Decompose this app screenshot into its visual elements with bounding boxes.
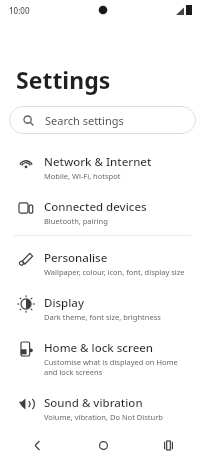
staticText: Network & Internet	[44, 154, 152, 170]
staticText: Display	[44, 295, 84, 311]
button[interactable]: Recents	[157, 434, 179, 456]
staticText: Mobile, Wi-Fi, hotspot	[44, 171, 121, 181]
button[interactable]: Sound & vibration	[0, 386, 205, 431]
staticText: Bluetooth, pairing	[44, 216, 108, 226]
staticText: Wallpaper, colour, icon, font, display s…	[44, 267, 185, 277]
button[interactable]: Notifications	[0, 431, 205, 456]
staticText: Volume, vibration, Do Not Disturb	[44, 412, 163, 422]
button[interactable]: Search settings	[9, 106, 196, 134]
staticText: Home & lock screen	[44, 340, 154, 356]
button[interactable]: Back	[26, 434, 48, 456]
staticText: Settings	[16, 64, 111, 95]
staticText: Personalise	[44, 250, 108, 266]
button[interactable]: Display	[0, 286, 205, 331]
button[interactable]: Connected devices	[0, 190, 205, 235]
staticText: Notifications	[44, 440, 115, 447]
button[interactable]: Personalise	[0, 241, 205, 286]
staticText: Search settings	[45, 113, 124, 128]
staticText: Connected devices	[44, 199, 147, 215]
staticText: 10:00	[9, 5, 30, 16]
staticText: Customise what is displayed on Home and …	[44, 357, 191, 377]
staticText: Sound & vibration	[44, 395, 143, 411]
button[interactable]: Network & Internet	[0, 145, 205, 190]
staticText: Dark theme, font size, brightness	[44, 312, 161, 322]
button[interactable]: Home	[92, 434, 114, 456]
button[interactable]: Home & lock screen	[0, 331, 205, 386]
